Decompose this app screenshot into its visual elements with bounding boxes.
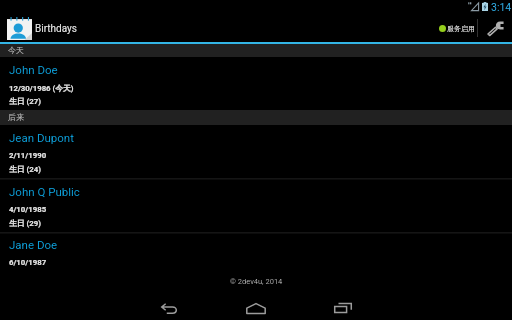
staticText: 3:14 <box>491 1 512 13</box>
button[interactable]: Recent apps <box>315 290 371 320</box>
staticText: 后来 <box>8 112 24 122</box>
staticText: Jane Doe <box>9 238 58 251</box>
button[interactable]: Home <box>228 290 284 320</box>
staticText: Birthdays <box>35 23 77 35</box>
staticText: 2/11/1990 <box>9 151 47 160</box>
staticText: © 2dev4u, 2014 <box>230 277 283 286</box>
staticText: John Doe <box>9 63 58 76</box>
button[interactable]: Jean Dupont <box>0 125 512 178</box>
button[interactable]: John Q Public <box>0 179 512 232</box>
button[interactable]: Jane Doe <box>0 232 512 276</box>
button[interactable]: John Doe <box>0 57 512 110</box>
staticText: Jean Dupont <box>9 131 74 144</box>
staticText: 4/10/1985 <box>9 205 47 214</box>
button[interactable]: 服务启用 <box>435 14 477 42</box>
staticText: John Q Public <box>9 185 80 198</box>
staticText: 服务启用 <box>447 24 475 33</box>
staticText: 生日 (27) <box>9 96 41 106</box>
staticText: 生日 (24) <box>9 164 41 174</box>
staticText: 6/10/1987 <box>9 258 47 267</box>
staticText: 今天 <box>8 45 24 55</box>
staticText: 12/30/1986 (今天) <box>9 83 74 93</box>
staticText: 生日 (29) <box>9 218 41 228</box>
button[interactable]: Back <box>142 290 198 320</box>
button[interactable]: Settings <box>478 14 512 42</box>
